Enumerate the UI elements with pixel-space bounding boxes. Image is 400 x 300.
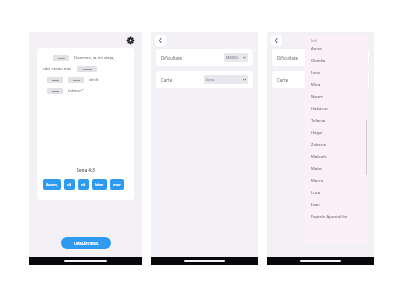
button[interactable]: Luca	[311, 187, 368, 199]
button[interactable]: Back	[271, 35, 282, 46]
staticText: Mica	[311, 82, 321, 88]
button[interactable]: Amos	[311, 43, 368, 55]
staticText: decît	[89, 77, 99, 83]
button[interactable]: să	[78, 179, 89, 190]
button[interactable]: Faptele Apostolilor	[311, 211, 368, 223]
button[interactable]: Carte	[156, 71, 253, 88]
staticText: MEDIU	[226, 55, 239, 60]
staticText: Tefania	[311, 118, 326, 124]
button[interactable]: Iona	[311, 67, 368, 79]
staticText: Habacuc	[311, 106, 328, 112]
button[interactable]: URMĂTORUL	[61, 237, 111, 249]
staticText: URMĂTORUL	[74, 241, 99, 246]
button[interactable]: Naum	[311, 91, 368, 103]
button[interactable]: Back	[155, 35, 166, 46]
button[interactable]: Marcu	[311, 175, 368, 187]
staticText: Iona	[206, 77, 215, 82]
staticText: Ioan	[311, 202, 320, 208]
button[interactable]: Tefania	[311, 115, 368, 127]
staticText: Ioel	[311, 38, 317, 43]
staticText: bine	[95, 182, 104, 187]
staticText: Dificultate	[277, 55, 299, 61]
button[interactable]: Matei	[311, 163, 368, 175]
staticText: căci vreau mai	[43, 66, 72, 72]
staticText: să	[81, 182, 86, 187]
staticText: trăiesc!"	[68, 88, 84, 94]
button[interactable]: bine	[92, 179, 107, 190]
button[interactable]: să	[64, 179, 75, 190]
staticText: Doamne, ia-mi viaţa,	[74, 55, 115, 61]
staticText: Faptele Apostolilor	[311, 214, 348, 220]
staticText: să	[67, 182, 72, 187]
button[interactable]: Dificultate	[156, 49, 253, 66]
staticText: Naum	[311, 94, 324, 100]
button[interactable]: mor	[110, 179, 124, 190]
button[interactable]: Mica	[311, 79, 368, 91]
button[interactable]: Dificultate	[272, 49, 369, 66]
button[interactable]: Hagai	[311, 127, 368, 139]
button[interactable]: Settings	[124, 34, 136, 46]
staticText: Matei	[311, 166, 323, 172]
staticText: Carte	[277, 77, 289, 83]
button[interactable]: Obadia	[311, 55, 368, 67]
staticText: Maleahi	[311, 154, 327, 160]
staticText: Iona	[311, 70, 320, 76]
button[interactable]: Carte	[272, 71, 369, 88]
staticText: Acum,	[46, 182, 58, 187]
staticText: Amos	[311, 46, 323, 52]
staticText: Hagai	[311, 130, 323, 136]
button[interactable]: Ioan	[311, 199, 368, 211]
button[interactable]: Habacuc	[311, 103, 368, 115]
button[interactable]: Zaharia	[311, 139, 368, 151]
staticText: Obadia	[311, 58, 326, 64]
button[interactable]: Acum,	[43, 179, 61, 190]
staticText: Luca	[311, 190, 321, 196]
staticText: mor	[113, 182, 121, 187]
button[interactable]: Maleahi	[311, 151, 368, 163]
staticText: Carte	[161, 77, 173, 83]
staticText: Iona 4:3	[77, 167, 95, 173]
staticText: Dificultate	[161, 55, 183, 61]
staticText: Marcu	[311, 178, 324, 184]
staticText: Zaharia	[311, 142, 326, 148]
